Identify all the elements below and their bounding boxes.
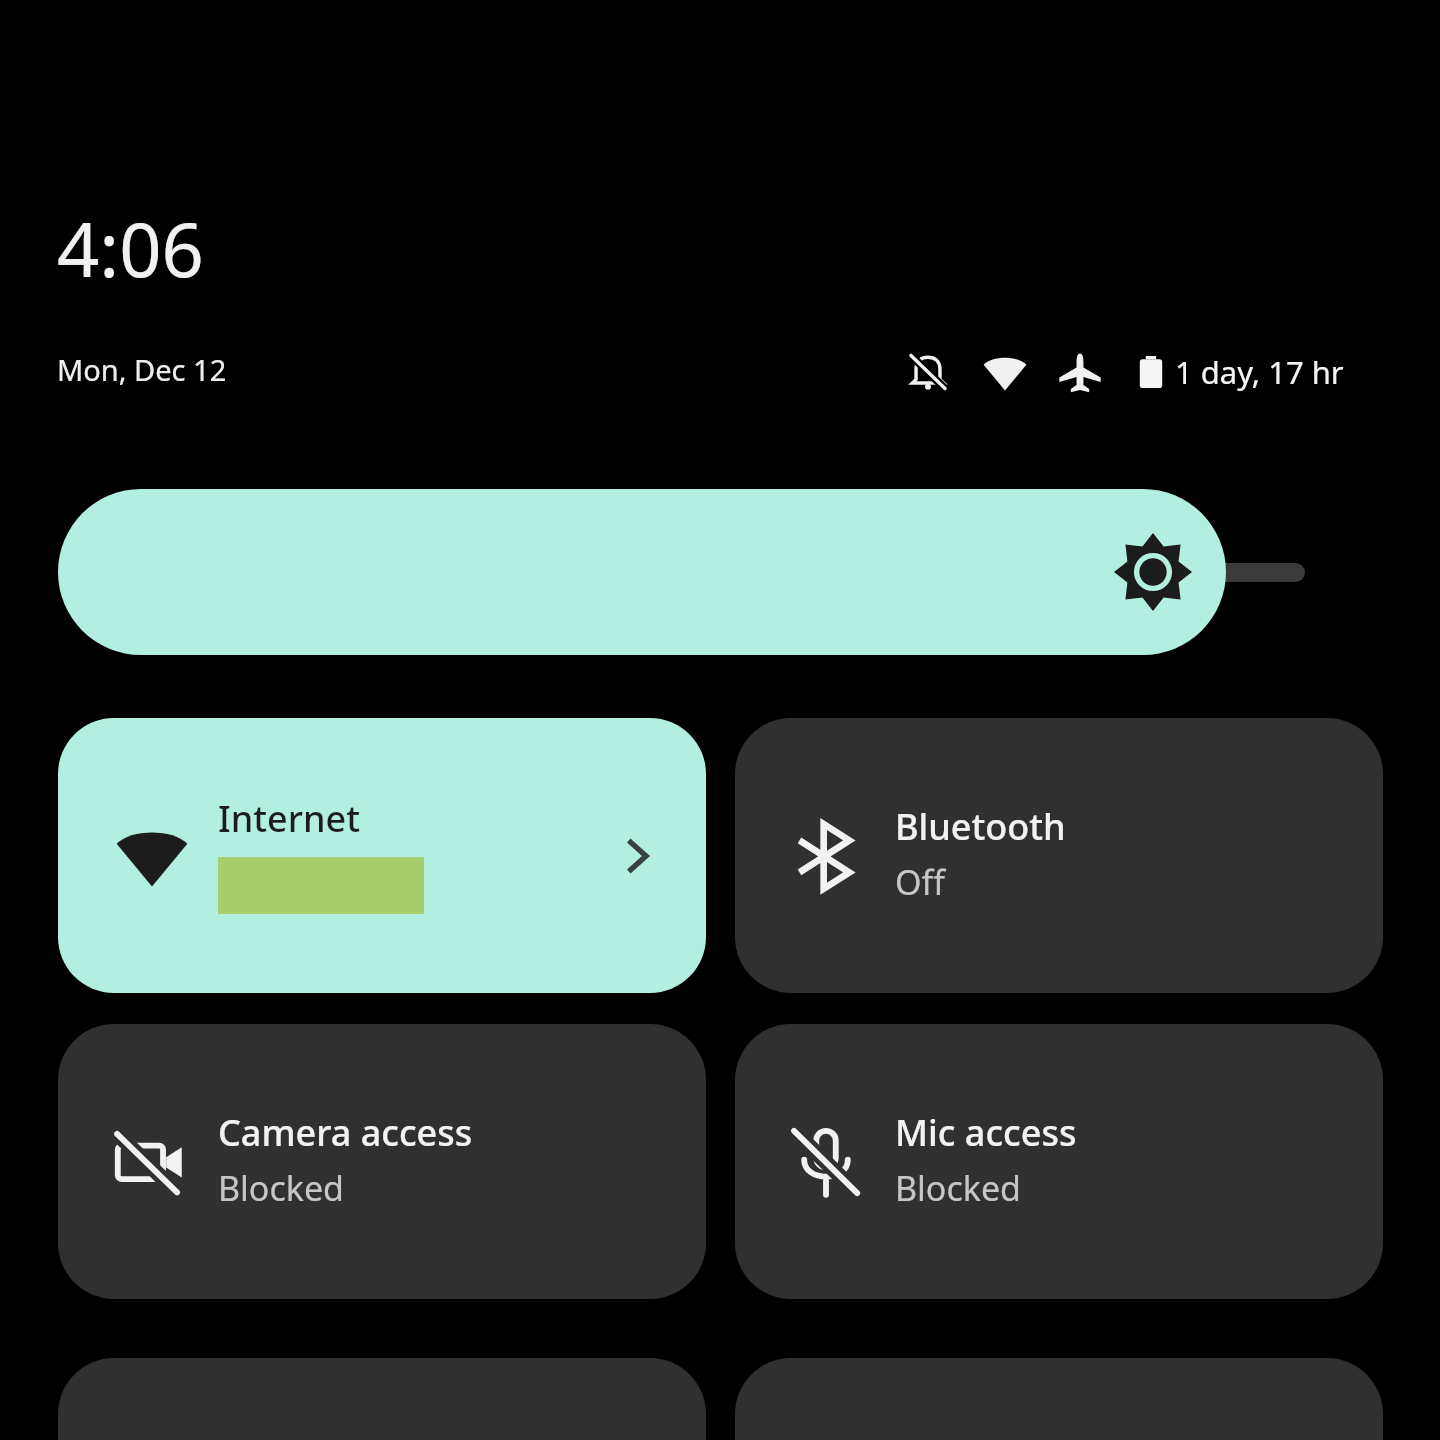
staticText: Off bbox=[895, 859, 945, 905]
staticText: Bluetooth bbox=[895, 802, 1066, 851]
staticText: Camera access bbox=[218, 1108, 473, 1157]
staticText: Blocked bbox=[895, 1165, 1022, 1211]
button[interactable]: Brightness bbox=[58, 489, 1307, 655]
staticText: Internet bbox=[218, 794, 361, 843]
staticText: Mon, Dec 12 bbox=[57, 350, 227, 389]
staticText: 1 day, 17 hr bbox=[1175, 351, 1344, 393]
staticText: Mic access bbox=[895, 1108, 1077, 1157]
staticText: 4:06 bbox=[57, 198, 204, 299]
staticText: Blocked bbox=[218, 1165, 345, 1211]
button[interactable]: Auto-rotate bbox=[58, 1358, 706, 1440]
button[interactable]: Bluetooth bbox=[735, 718, 1383, 993]
button[interactable]: Mic access bbox=[735, 1024, 1383, 1299]
button[interactable]: Flashlight bbox=[735, 1358, 1383, 1440]
button[interactable]: Internet bbox=[58, 718, 706, 993]
button[interactable]: Camera access bbox=[58, 1024, 706, 1299]
